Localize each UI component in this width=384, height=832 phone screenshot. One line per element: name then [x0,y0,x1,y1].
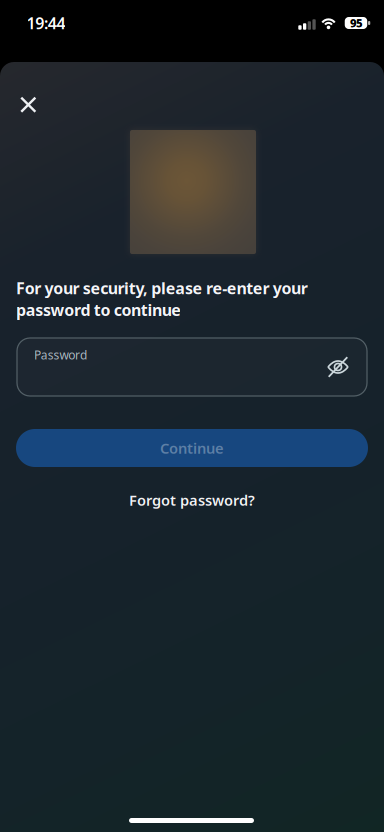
button[interactable]: Show password [320,349,356,385]
staticText: 95 [350,16,362,30]
button[interactable]: Continue [16,429,368,467]
staticText: Continue [160,438,224,458]
staticText: Password [34,347,87,363]
staticText: Forgot password? [129,490,255,510]
button[interactable]: Close [11,88,45,122]
staticText: 95 [350,16,362,30]
button[interactable]: Forgot password? [129,490,255,510]
staticText: 19:44 [27,12,65,34]
staticText: For your security, please re-enter your … [16,277,308,320]
